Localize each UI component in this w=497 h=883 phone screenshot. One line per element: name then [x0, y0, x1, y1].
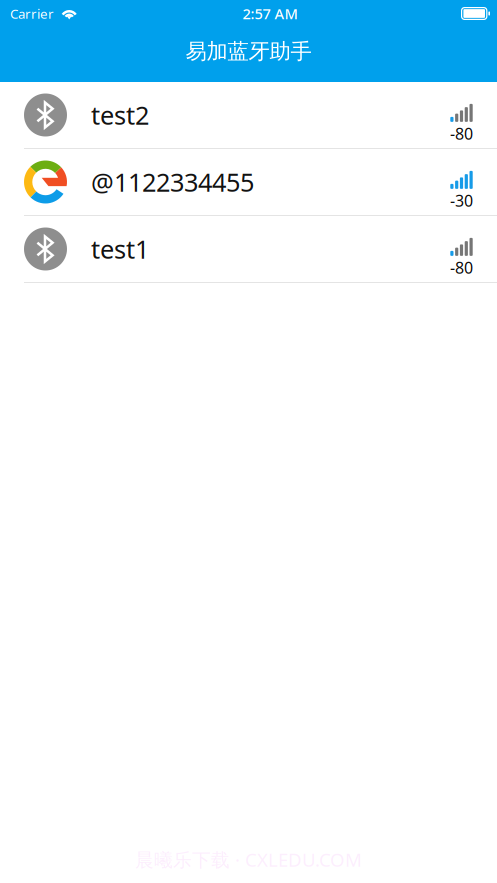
staticText: -80 — [450, 123, 473, 144]
staticText: test2 — [91, 98, 149, 132]
staticText: test1 — [91, 232, 149, 266]
staticText: -30 — [450, 190, 473, 211]
staticText: 2:57 AM — [242, 4, 297, 23]
staticText: 易加蓝牙助手 — [185, 38, 311, 65]
staticText: -80 — [450, 257, 473, 278]
button[interactable]: test2 — [0, 82, 497, 149]
staticText: 晨曦乐下载 · CXLEDU.COM — [135, 847, 362, 872]
staticText: Carrier — [10, 5, 54, 22]
button[interactable]: test1 — [0, 216, 497, 283]
staticText: @1122334455 — [91, 165, 254, 199]
button[interactable]: @1122334455 — [0, 149, 497, 216]
